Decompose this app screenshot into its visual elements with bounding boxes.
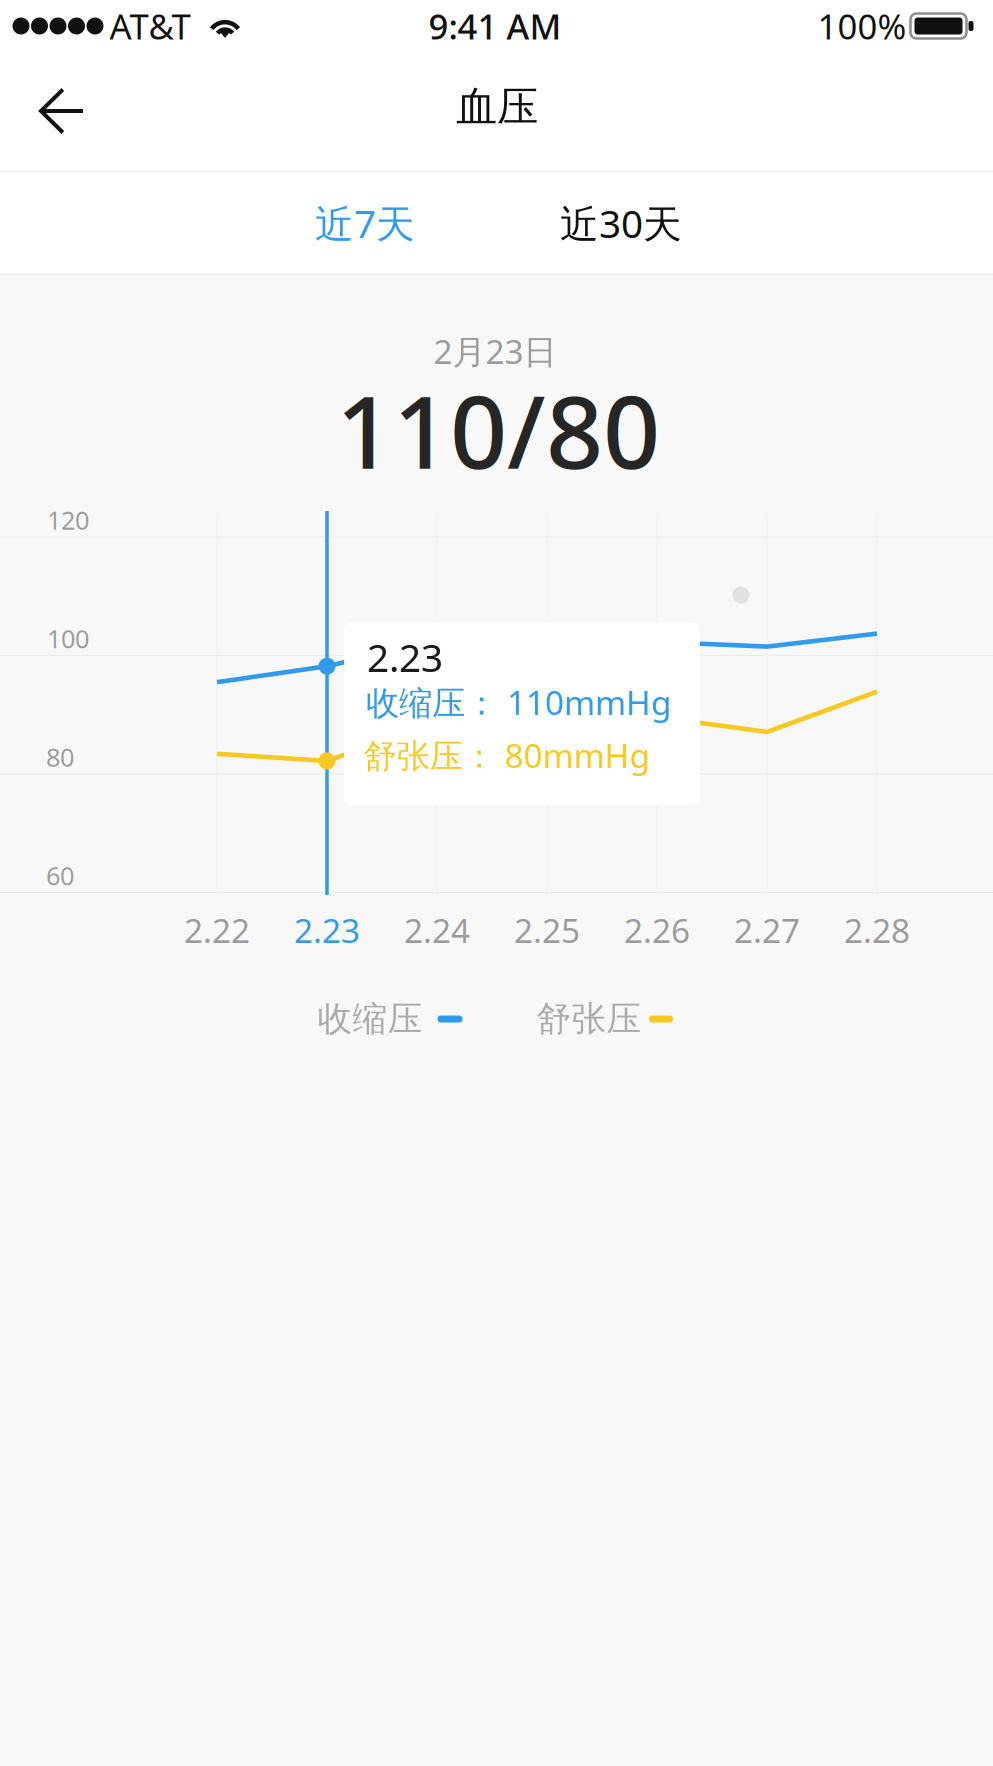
staticText: 2.23 — [367, 631, 443, 683]
staticText: 收缩压： 110mmHg — [366, 680, 672, 724]
staticText: AT&T — [109, 3, 190, 49]
staticText: 血压 — [456, 82, 538, 132]
staticText: 收缩压 — [317, 998, 422, 1040]
staticText: 近30天 — [560, 197, 682, 249]
staticText: 9:41 AM — [428, 3, 561, 49]
staticText: 100 — [47, 622, 89, 655]
staticText: 110/80 — [336, 364, 660, 496]
staticText: 2.26 — [624, 908, 690, 952]
staticText: 舒张压 — [536, 998, 641, 1040]
staticText: 2.27 — [734, 908, 800, 952]
staticText: 2.24 — [404, 908, 470, 952]
staticText: 60 — [46, 859, 74, 892]
staticText: 2.22 — [184, 908, 250, 952]
staticText: 舒张压： 80mmHg — [363, 733, 650, 777]
staticText: 2.23 — [294, 908, 360, 952]
staticText: 2月23日 — [433, 329, 556, 373]
staticText: 80 — [46, 740, 74, 774]
button[interactable]: 近7天 — [240, 173, 490, 273]
staticText: 120 — [47, 503, 89, 537]
staticText: 100% — [817, 3, 906, 49]
staticText: 2.25 — [514, 908, 580, 952]
button[interactable]: Back — [1, 56, 131, 165]
staticText: 2.28 — [844, 908, 910, 952]
button[interactable]: 近30天 — [496, 173, 746, 273]
staticText: 近7天 — [315, 197, 415, 249]
